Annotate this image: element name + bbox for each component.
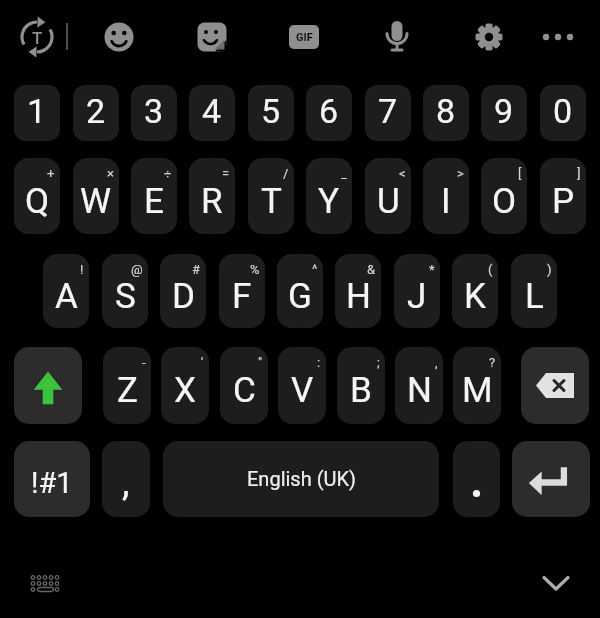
staticText: D — [172, 276, 195, 317]
button[interactable]: D — [160, 254, 206, 328]
button[interactable] — [538, 568, 574, 596]
staticText: R — [201, 181, 223, 222]
button[interactable]: 2 — [73, 85, 119, 141]
staticText: ' — [201, 355, 204, 370]
button[interactable] — [521, 347, 589, 424]
button[interactable]: G — [277, 254, 323, 328]
staticText: ^ — [312, 262, 318, 277]
staticText: P — [552, 181, 575, 222]
button[interactable]: Y — [306, 158, 352, 234]
staticText: I — [441, 181, 451, 222]
button[interactable]: X — [161, 347, 209, 424]
button[interactable] — [95, 13, 143, 61]
staticText: ; — [377, 355, 380, 370]
button[interactable]: E — [131, 158, 177, 234]
staticText: X — [174, 370, 196, 411]
staticText: 5 — [261, 91, 281, 131]
button[interactable] — [534, 13, 582, 61]
button[interactable]: Z — [103, 347, 151, 424]
staticText: O — [492, 181, 517, 222]
button[interactable]: N — [395, 347, 443, 424]
staticText: = — [222, 166, 230, 181]
button[interactable]: B — [337, 347, 385, 424]
staticText: W — [80, 181, 112, 222]
button[interactable]: , — [102, 441, 150, 517]
button[interactable] — [373, 13, 421, 61]
button[interactable] — [465, 13, 513, 61]
staticText: , — [435, 355, 438, 370]
button[interactable] — [26, 570, 62, 598]
button[interactable]: P — [540, 158, 586, 234]
staticText: T — [32, 28, 43, 48]
staticText: L — [525, 276, 544, 317]
staticText: B — [350, 370, 372, 411]
button[interactable]: M — [453, 347, 501, 424]
staticText: E — [144, 181, 164, 222]
button[interactable]: 4 — [189, 85, 235, 141]
button[interactable]: U — [365, 158, 411, 234]
button[interactable]: 1 — [14, 85, 60, 141]
staticText: : — [317, 355, 321, 370]
staticText: + — [47, 166, 55, 181]
staticText: !#1 — [31, 466, 73, 500]
staticText: _ — [341, 166, 347, 181]
button[interactable]: C — [220, 347, 268, 424]
button[interactable]: J — [394, 254, 440, 328]
button[interactable]: Q — [14, 158, 60, 234]
button[interactable]: O — [481, 158, 527, 234]
button[interactable]: T — [248, 158, 294, 234]
button[interactable]: F — [219, 254, 265, 328]
button[interactable]: GIF — [289, 25, 319, 49]
staticText: 0 — [553, 91, 573, 131]
staticText: " — [258, 355, 263, 370]
button[interactable] — [453, 441, 500, 517]
staticText: Z — [117, 370, 138, 411]
button[interactable]: 5 — [248, 85, 294, 141]
button[interactable]: 6 — [306, 85, 352, 141]
staticText: C — [233, 370, 256, 411]
staticText: GIF — [296, 31, 313, 44]
staticText: 1 — [27, 91, 47, 131]
staticText: 6 — [319, 91, 339, 131]
staticText: 2 — [86, 91, 106, 131]
button[interactable] — [14, 347, 82, 424]
staticText: H — [346, 276, 371, 317]
staticText: J — [407, 276, 427, 317]
staticText: < — [399, 166, 406, 181]
staticText: ? — [489, 355, 496, 370]
staticText: / — [283, 166, 289, 181]
staticText: V — [291, 370, 314, 411]
staticText: , — [122, 460, 130, 505]
button[interactable]: K — [452, 254, 498, 328]
button[interactable]: 8 — [423, 85, 469, 141]
staticText: × — [107, 166, 114, 181]
button[interactable]: !#1 — [14, 441, 90, 517]
staticText: * — [429, 262, 435, 277]
staticText: 9 — [494, 91, 514, 131]
button[interactable]: 9 — [481, 85, 527, 141]
staticText: English (UK) — [247, 467, 356, 490]
staticText: U — [377, 181, 400, 222]
button[interactable]: L — [511, 254, 557, 328]
staticText: A — [55, 276, 78, 317]
button[interactable] — [188, 13, 236, 61]
button[interactable]: W — [73, 158, 119, 234]
button[interactable]: H — [335, 254, 381, 328]
staticText: ÷ — [164, 166, 172, 181]
button[interactable]: 7 — [365, 85, 411, 141]
button[interactable] — [512, 441, 590, 517]
staticText: ] — [577, 166, 581, 181]
button[interactable] — [13, 13, 61, 61]
staticText: M — [462, 370, 493, 411]
button[interactable]: English (UK) — [163, 441, 439, 517]
button[interactable]: R — [189, 158, 235, 234]
button[interactable]: I — [423, 158, 469, 234]
button[interactable]: V — [278, 347, 326, 424]
staticText: % — [250, 262, 260, 277]
button[interactable]: A — [43, 254, 89, 328]
button[interactable]: 0 — [540, 85, 586, 141]
button[interactable]: 3 — [131, 85, 177, 141]
staticText: # — [192, 262, 201, 277]
staticText: ! — [80, 262, 84, 277]
button[interactable]: S — [102, 254, 148, 328]
